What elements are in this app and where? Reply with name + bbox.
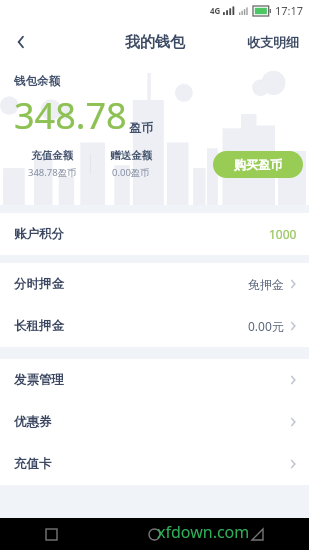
button[interactable]: 充值卡 bbox=[0, 443, 309, 485]
staticText: 赠送金额 bbox=[110, 149, 152, 162]
button[interactable]: Recents bbox=[0, 518, 103, 550]
button[interactable]: 优惠券 bbox=[0, 401, 309, 443]
button[interactable]: Back bbox=[0, 21, 42, 63]
staticText: 1000 bbox=[269, 226, 297, 242]
staticText: 充值金额 bbox=[31, 149, 73, 162]
staticText: 免押金 bbox=[248, 277, 284, 292]
staticText: 购买盈币 bbox=[234, 157, 282, 172]
staticText: 钱包余额 bbox=[14, 74, 60, 88]
staticText: xfdown.com bbox=[157, 521, 250, 543]
staticText: 348.78 bbox=[14, 91, 127, 140]
staticText: 0.00盈币 bbox=[112, 166, 150, 179]
staticText: 发票管理 bbox=[14, 372, 64, 388]
button[interactable]: 分时押金 bbox=[0, 263, 309, 305]
staticText: 收支明细 bbox=[247, 34, 299, 50]
button[interactable]: 长租押金 bbox=[0, 305, 309, 347]
staticText: 17:17 bbox=[275, 3, 304, 18]
staticText: 0.00元 bbox=[248, 318, 284, 334]
button[interactable]: 账户积分 bbox=[0, 213, 309, 255]
staticText: 4G bbox=[210, 5, 221, 16]
staticText: 长租押金 bbox=[14, 318, 64, 334]
staticText: 我的钱包 bbox=[125, 33, 185, 52]
staticText: 盈币 bbox=[129, 120, 153, 135]
staticText: 充值卡 bbox=[14, 456, 52, 472]
button[interactable]: 发票管理 bbox=[0, 359, 309, 401]
button[interactable]: 购买盈币 bbox=[213, 151, 303, 178]
staticText: 分时押金 bbox=[14, 276, 64, 292]
button[interactable]: Home bbox=[103, 518, 206, 550]
staticText: 优惠券 bbox=[14, 414, 52, 430]
button[interactable]: 收支明细 bbox=[237, 23, 309, 61]
button[interactable]: Back bbox=[206, 518, 309, 550]
staticText: 348.78盈币 bbox=[28, 166, 77, 179]
staticText: 账户积分 bbox=[14, 226, 64, 242]
